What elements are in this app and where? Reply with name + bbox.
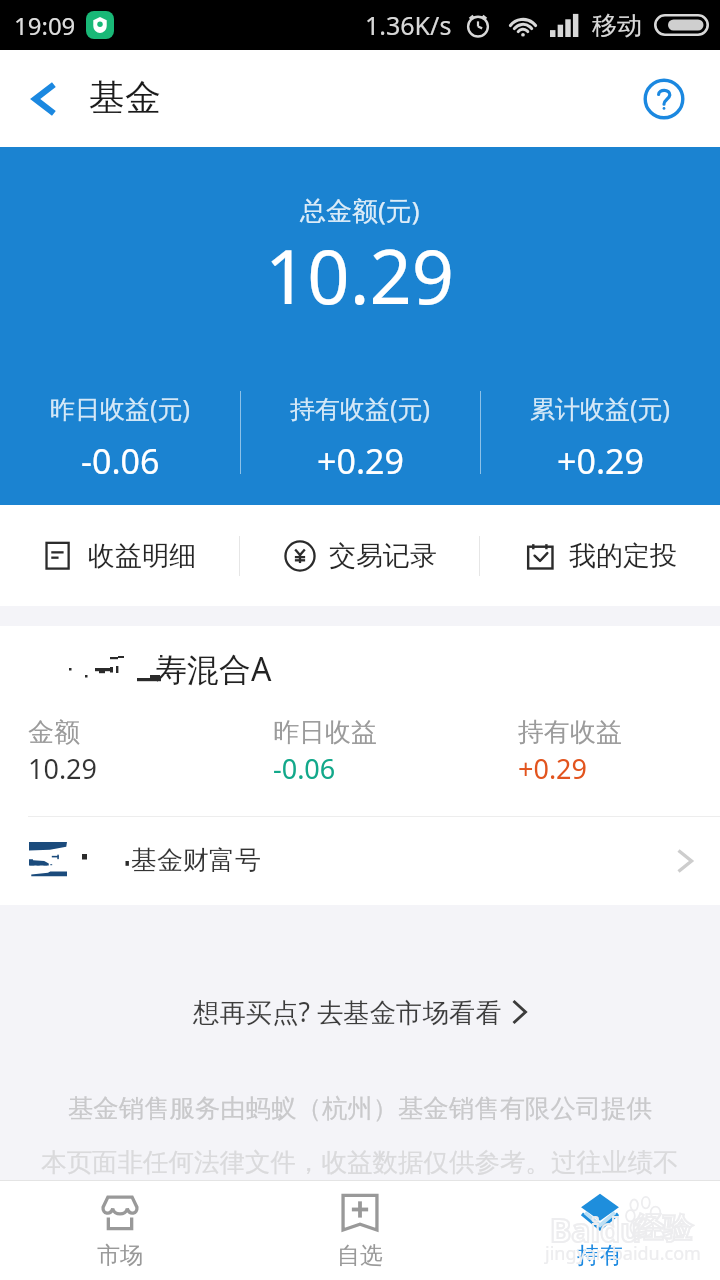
staticText: 10.29: [28, 750, 98, 787]
staticText: -0.06: [81, 438, 160, 484]
staticText: -0.06: [273, 750, 336, 787]
staticText: +0.29: [317, 438, 404, 484]
staticText: 交易记录: [329, 539, 437, 573]
staticText: 1.36K/s: [365, 8, 452, 42]
staticText: 总金额(元): [300, 192, 420, 228]
staticText: 昨日收益: [273, 716, 377, 749]
staticText: Baidu: [550, 1208, 642, 1252]
staticText: 想再买点? 去基金市场看看: [193, 994, 502, 1030]
staticText: jingyan.baidu.com: [545, 1241, 701, 1266]
staticText: 基金销售服务由蚂蚁（杭州）基金销售有限公司提供: [68, 1093, 652, 1125]
staticText: 市场: [97, 1241, 143, 1270]
button[interactable]: 市场: [0, 1181, 240, 1280]
staticText: 经验: [634, 1210, 692, 1247]
button[interactable]: 我的定投: [480, 505, 720, 606]
staticText: 本页面非任何法律文件，收益数据仅供参考。过往业绩不: [41, 1146, 679, 1178]
button[interactable]: 持有: [480, 1181, 720, 1280]
staticText: 昨日收益(元): [50, 391, 191, 425]
staticText: +0.29: [518, 750, 588, 787]
button[interactable]: Help: [640, 75, 688, 123]
staticText: 19:09: [14, 9, 76, 42]
button[interactable]: 交易记录: [240, 505, 480, 606]
staticText: 金额: [28, 716, 80, 749]
staticText: 持有收益(元): [290, 391, 431, 425]
staticText: 累计收益(元): [530, 391, 671, 425]
staticText: 10.29: [265, 225, 455, 326]
staticText: 基金: [89, 75, 161, 120]
staticText: 自选: [337, 1241, 383, 1270]
staticText: 收益明细: [88, 539, 196, 573]
button[interactable]: 自选: [240, 1181, 480, 1280]
staticText: 寿混合A: [155, 647, 272, 691]
button[interactable]: 收益明细: [0, 505, 240, 606]
staticText: 持有: [577, 1241, 623, 1270]
staticText: 我的定投: [569, 539, 677, 573]
button[interactable]: 基金财富号: [0, 817, 720, 905]
staticText: 移动: [592, 10, 642, 41]
button[interactable]: Back: [12, 67, 76, 131]
staticText: +0.29: [557, 438, 644, 484]
staticText: 基金财富号: [131, 844, 261, 877]
staticText: 持有收益: [518, 716, 622, 749]
button[interactable]: 想再买点? 去基金市场看看: [169, 990, 551, 1034]
button[interactable]: 寿混合A: [0, 626, 720, 812]
